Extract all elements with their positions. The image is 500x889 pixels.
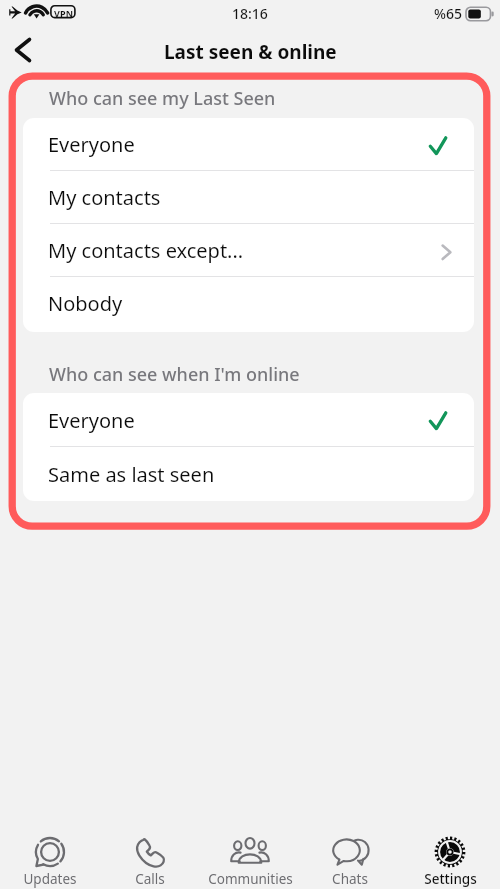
staticText: Everyone	[48, 407, 135, 434]
staticText: Last seen & online	[164, 39, 337, 65]
button[interactable]: My contacts	[23, 171, 474, 224]
staticText: Updates	[23, 870, 77, 888]
staticText: VPN	[54, 7, 74, 19]
staticText: Same as last seen	[48, 461, 215, 488]
staticText: Calls	[135, 870, 165, 888]
button[interactable]: Everyone	[23, 393, 474, 447]
staticText: Who can see when I'm online	[49, 362, 300, 387]
staticText: %65	[434, 4, 462, 23]
button[interactable]: Nobody	[23, 277, 474, 330]
button[interactable]: Communities	[200, 827, 300, 889]
button[interactable]: Chats	[300, 827, 400, 889]
staticText: Who can see my Last Seen	[49, 86, 276, 111]
button[interactable]: Back	[0, 28, 46, 72]
button[interactable]: Everyone	[23, 118, 474, 171]
staticText: My contacts except...	[48, 237, 244, 264]
staticText: Chats	[332, 870, 368, 888]
button[interactable]: Updates	[0, 827, 100, 889]
staticText: Communities	[208, 870, 293, 888]
staticText: Everyone	[48, 131, 135, 158]
staticText: Settings	[424, 870, 477, 888]
staticText: My contacts	[48, 184, 161, 211]
button[interactable]: Settings	[400, 827, 500, 889]
button[interactable]: Same as last seen	[23, 447, 474, 501]
staticText: Nobody	[48, 290, 123, 317]
button[interactable]: My contacts except...	[23, 224, 474, 277]
button[interactable]: Calls	[100, 827, 200, 889]
staticText: 18:16	[232, 4, 268, 23]
